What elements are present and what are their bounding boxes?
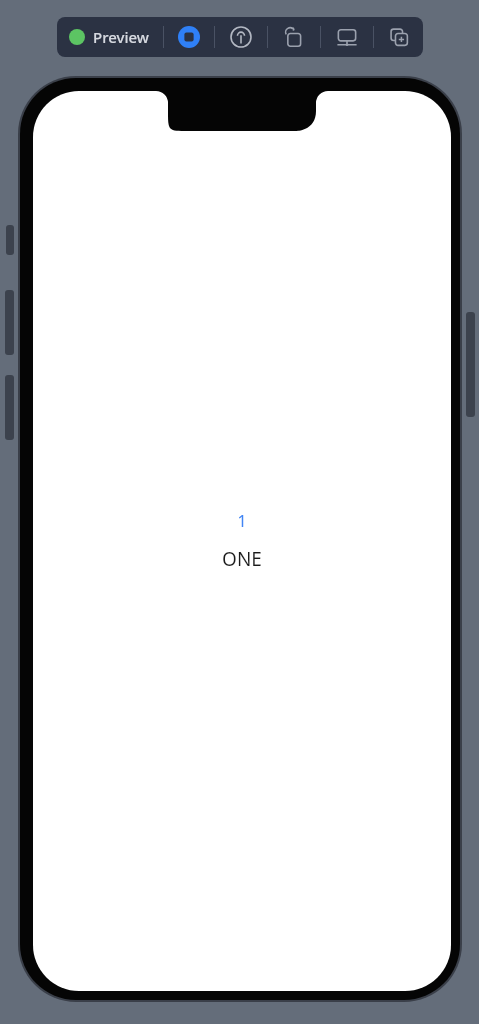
staticText: Preview xyxy=(93,27,149,47)
button[interactable]: Interactive preview xyxy=(164,17,214,57)
button[interactable]: Rerun preview xyxy=(268,17,320,57)
staticText: ONE xyxy=(222,546,262,572)
button[interactable]: Preview xyxy=(57,17,163,57)
button[interactable]: New preview window xyxy=(374,17,423,57)
button[interactable]: Select device xyxy=(321,17,373,57)
button[interactable]: UI check mode xyxy=(215,17,267,57)
staticText: 1 xyxy=(237,510,247,532)
